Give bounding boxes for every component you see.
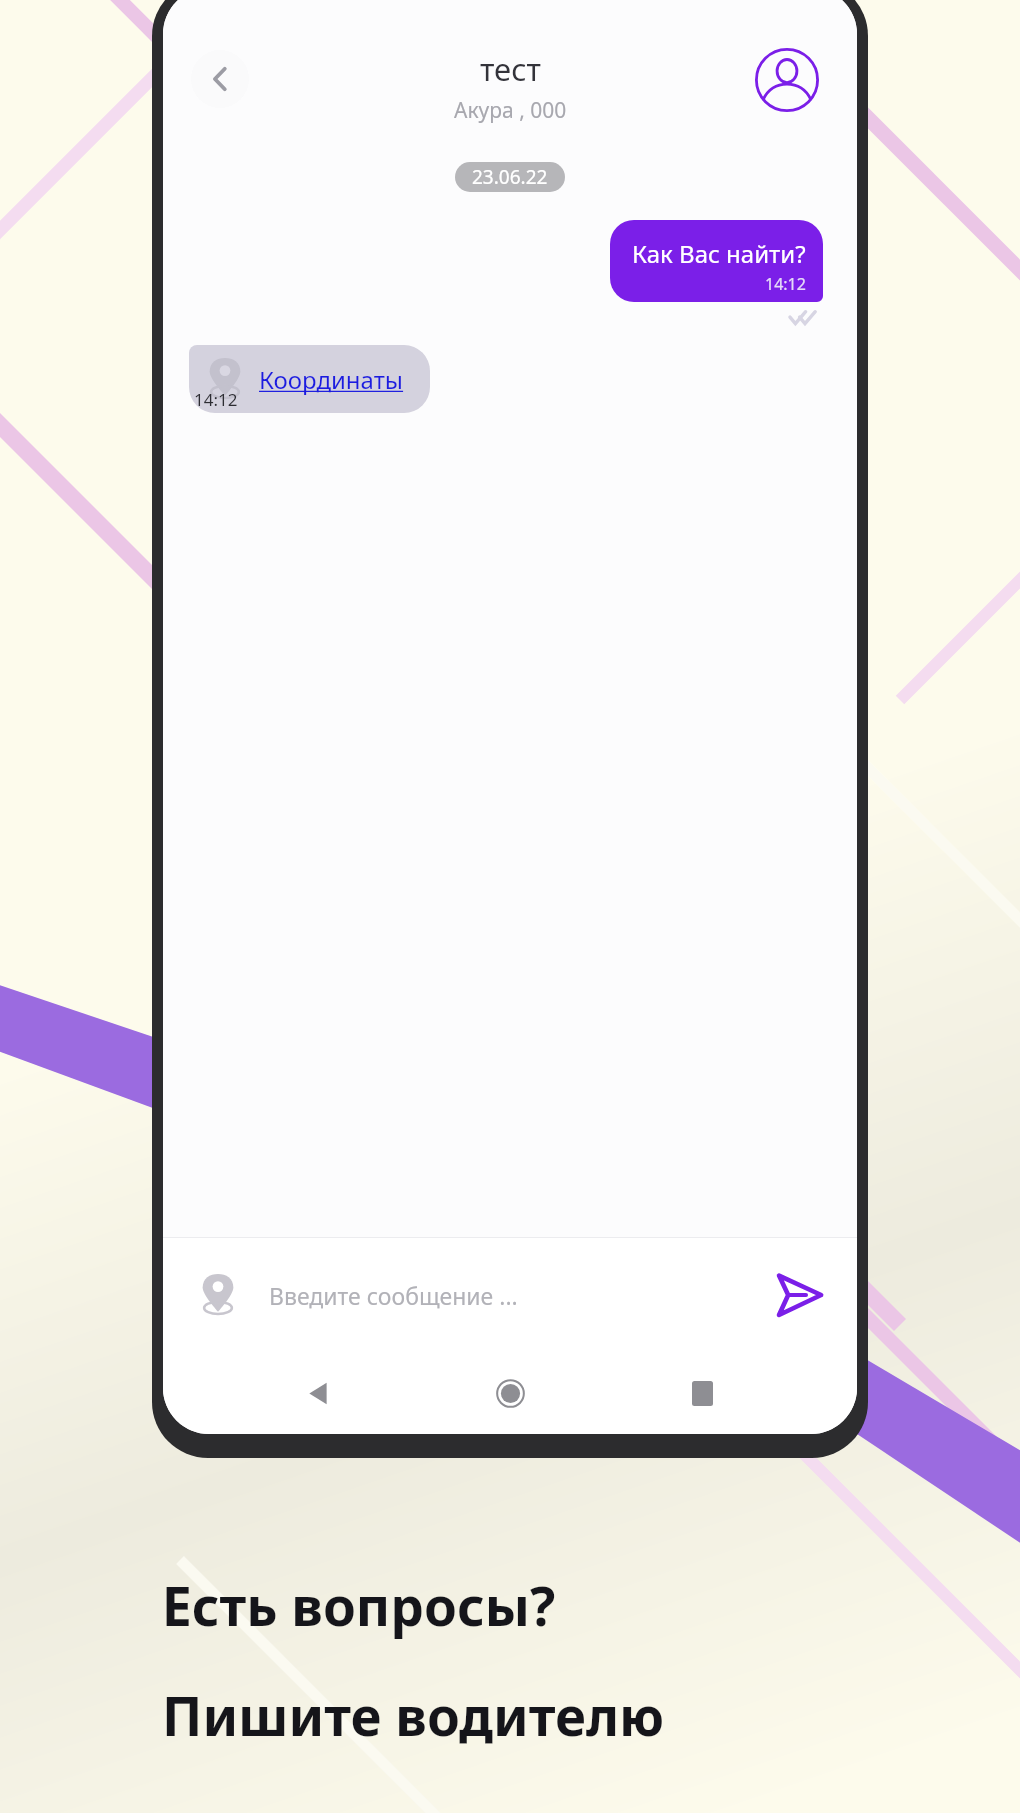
staticText: 23.06.22 — [472, 164, 548, 190]
staticText: Акура , 000 — [454, 96, 567, 125]
button[interactable]: Send — [765, 1261, 833, 1329]
staticText: тест — [480, 48, 541, 90]
button[interactable]: Back — [191, 50, 249, 108]
button[interactable]: Home — [484, 1367, 536, 1419]
button[interactable]: Back — [292, 1367, 344, 1419]
staticText: Как Вас найти? — [632, 237, 806, 270]
button[interactable]: Введите сообщение ... — [269, 1238, 765, 1352]
staticText: Есть вопросы? — [162, 1569, 556, 1641]
button[interactable]: Как Вас найти? — [610, 220, 823, 302]
staticText: Введите сообщение ... — [269, 1280, 518, 1311]
button[interactable]: Attach location — [189, 1266, 247, 1324]
staticText: 14:12 — [194, 388, 238, 411]
staticText: Координаты — [259, 363, 404, 396]
staticText: Пишите водителю — [162, 1679, 665, 1751]
button[interactable]: Profile — [755, 48, 819, 112]
button[interactable]: Recents — [676, 1367, 728, 1419]
button[interactable]: 23.06.22 — [455, 162, 565, 192]
staticText: 14:12 — [765, 273, 806, 295]
button[interactable]: Координаты — [189, 345, 430, 413]
